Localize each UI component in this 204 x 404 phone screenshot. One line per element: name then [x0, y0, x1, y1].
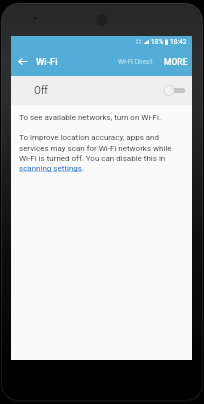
staticText: Off: [34, 85, 48, 97]
staticText: To see available networks, turn on Wi-Fi…: [19, 113, 162, 122]
button[interactable]: Navigate up: [11, 47, 34, 76]
staticText: 18%: [151, 38, 164, 46]
staticText: Wi-Fi: [36, 56, 58, 67]
staticText: MORE: [164, 57, 188, 67]
button[interactable]: Off: [11, 76, 192, 105]
button[interactable]: Wi-Fi Direct: [116, 47, 155, 76]
staticText: Wi-Fi Direct: [118, 58, 153, 66]
staticText: 18:42: [170, 38, 187, 46]
staticText: To improve location accuracy, apps and s…: [19, 133, 180, 173]
button[interactable]: MORE: [155, 47, 192, 76]
